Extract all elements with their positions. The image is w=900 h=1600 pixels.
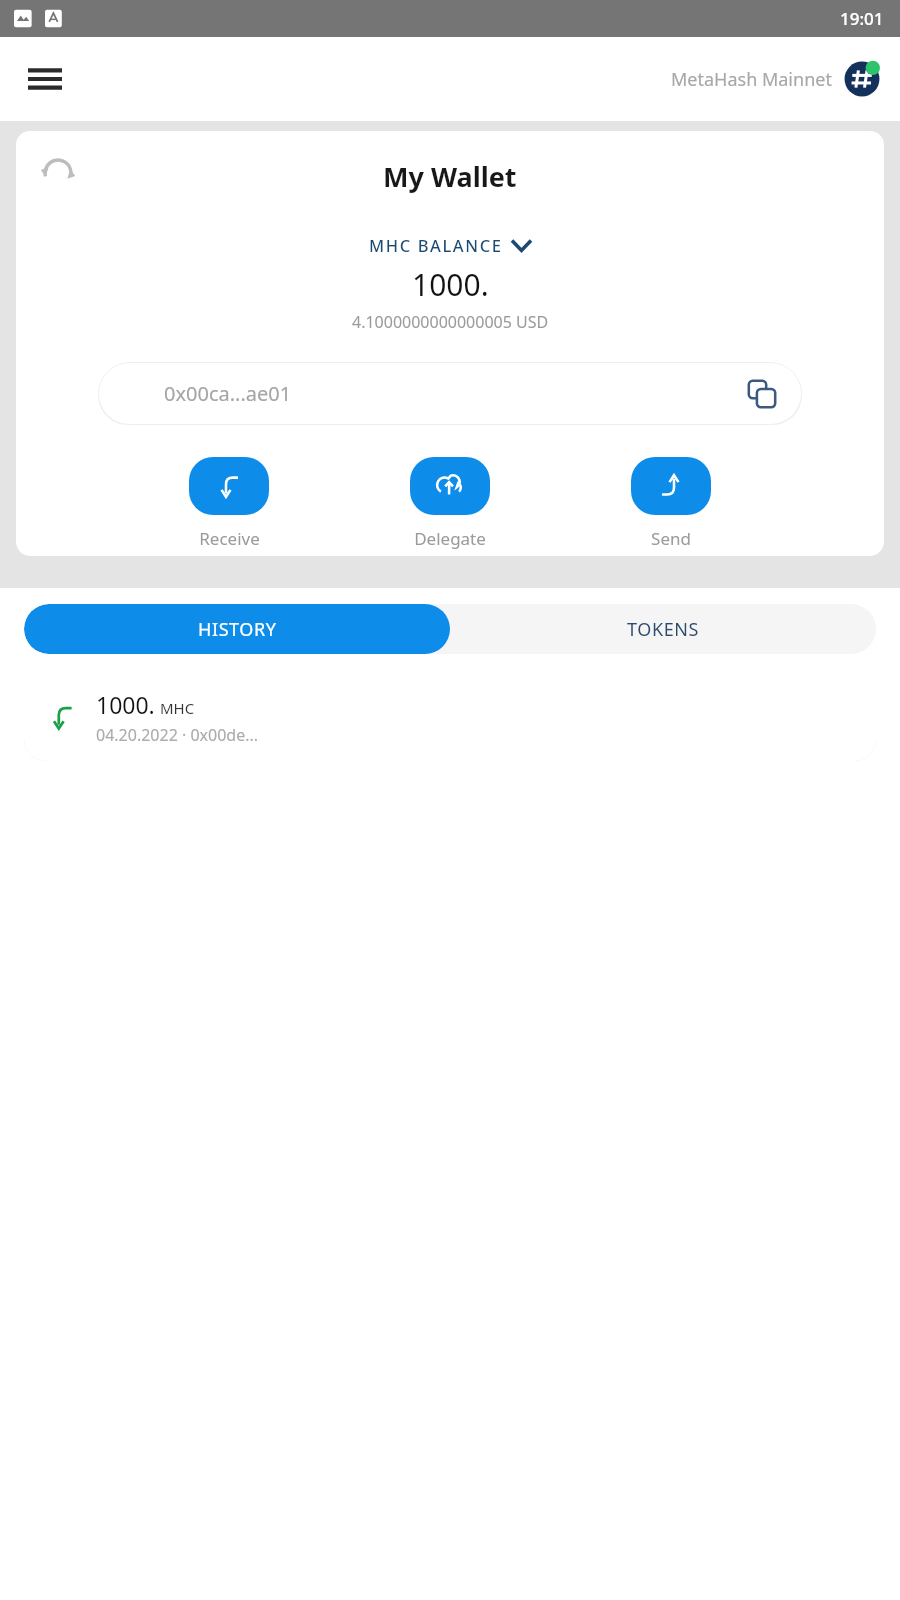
staticText: 0x00ca...ae01 [164,380,292,407]
staticText: Receive [199,527,260,550]
staticText: Send [651,527,691,550]
staticText: MHC BALANCE [369,234,503,256]
staticText: 1000. [412,264,489,305]
staticText: 4.1000000000000005 USD [352,311,549,333]
staticText: HISTORY [198,617,277,642]
staticText: TOKENS [627,617,700,642]
button[interactable]: HISTORY [24,604,450,654]
staticText: 1000. [96,689,155,720]
button[interactable]: TOKENS [450,604,876,654]
button[interactable]: Receive [181,457,277,550]
staticText: MHC [160,698,195,718]
button[interactable]: 0x00ca...ae01 [98,362,802,425]
staticText: MetaHash Mainnet [671,67,832,92]
button[interactable]: Menu [14,48,76,110]
button[interactable]: Refresh balance [30,145,86,201]
button[interactable]: MetaHash Mainnet [671,61,880,97]
staticText: Delegate [414,527,486,550]
button[interactable]: 1000. [24,673,876,761]
button[interactable]: Delegate [402,457,498,550]
button[interactable]: Send [623,457,719,550]
staticText: 19:01 [840,7,884,30]
button[interactable]: Copy address [740,372,784,416]
button[interactable]: MHC BALANCE [363,232,537,258]
staticText: My Wallet [383,158,517,195]
staticText: 04.20.2022 · 0x00de... [96,724,259,746]
